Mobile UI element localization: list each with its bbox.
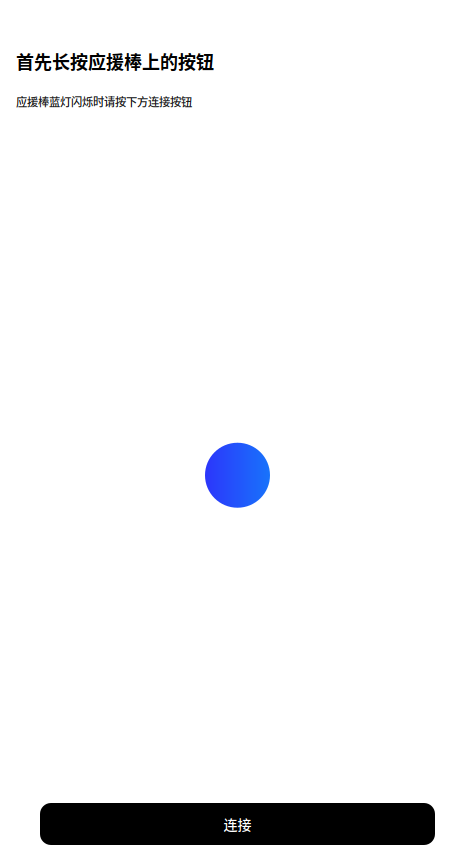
staticText: 首先长按应援棒上的按钮 [16,48,214,74]
staticText: 应援棒蓝灯闪烁时请按下方连接按钮 [16,93,192,109]
staticText: 连接 [223,814,251,834]
button[interactable]: 连接 [40,803,435,845]
